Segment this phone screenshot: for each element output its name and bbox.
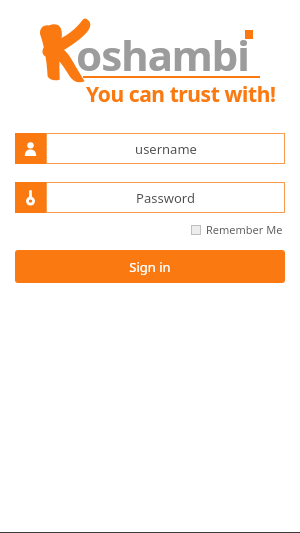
button[interactable]: Sign in — [15, 250, 285, 283]
staticText: Sign in — [129, 258, 171, 276]
staticText: Remember Me — [206, 222, 283, 237]
other: Username — [15, 133, 46, 164]
staticText: You can trust with! — [86, 80, 276, 109]
button[interactable]: Remember Me — [189, 219, 285, 240]
other: Password — [15, 182, 46, 213]
staticText: oshambi — [76, 26, 249, 83]
staticText: username — [135, 140, 197, 158]
button[interactable]: Username — [15, 133, 285, 164]
button[interactable]: Password — [15, 182, 285, 213]
staticText: Password — [136, 189, 195, 207]
